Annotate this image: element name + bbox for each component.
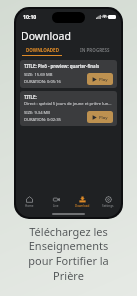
button[interactable]: DOWNLOADED <box>16 46 68 57</box>
button[interactable]: Download <box>69 193 95 210</box>
staticText: TITLE: <box>24 94 37 100</box>
staticText: Download <box>21 29 71 43</box>
staticText: Téléchargez les Enseignements pour Forti… <box>0 224 137 284</box>
button[interactable]: Settings <box>95 193 121 210</box>
button[interactable]: TITLE: <box>20 91 117 126</box>
staticText: Settings <box>102 204 114 208</box>
staticText: Direct : spécial 5 jours de jeune et pri… <box>24 101 113 107</box>
staticText: DURATION: 0:05:16 <box>24 79 61 85</box>
button[interactable]: IN PROGRESS <box>68 46 121 57</box>
staticText: SIZE: 15.69 MB <box>24 72 53 78</box>
button[interactable]: TITLE: Pivô - preview: quarter-finals <box>20 60 117 88</box>
button[interactable]: Live <box>43 193 69 210</box>
button[interactable]: Home <box>16 193 43 210</box>
staticText: Play <box>99 76 108 82</box>
button[interactable]: Play <box>87 73 113 85</box>
staticText: SIZE: 9.34 MB <box>24 110 50 116</box>
staticText: Play <box>99 114 108 120</box>
staticText: IN PROGRESS <box>80 47 110 53</box>
staticText: TITLE: Pivô - preview: quarter-finals <box>24 63 100 69</box>
staticText: Live <box>53 204 59 208</box>
staticText: DOWNLOADED <box>26 47 59 53</box>
staticText: DURATION: 0:02:35 <box>24 117 61 123</box>
staticText: Download <box>75 204 90 208</box>
staticText: 10:10 <box>23 13 37 20</box>
staticText: Home <box>25 204 34 208</box>
button[interactable]: Play <box>87 111 113 123</box>
